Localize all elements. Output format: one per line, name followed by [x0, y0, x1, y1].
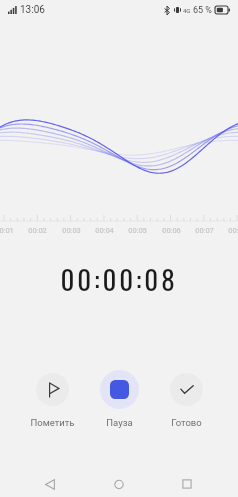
button[interactable]: Back — [35, 469, 65, 497]
staticText: 00:01 — [0, 226, 14, 235]
staticText: 00:07 — [195, 226, 214, 235]
staticText: Пауза — [106, 417, 133, 428]
staticText: 65 % — [193, 5, 212, 16]
staticText: Пометить — [30, 417, 75, 428]
staticText: Готово — [171, 417, 202, 428]
button[interactable]: Готово — [153, 369, 219, 427]
button[interactable]: Home — [104, 469, 134, 497]
staticText: 00:04 — [95, 226, 114, 235]
staticText: 00:00:08 — [60, 259, 178, 299]
button[interactable]: Пометить — [19, 369, 85, 427]
staticText: 13:06 — [20, 4, 45, 16]
button[interactable]: Recents — [172, 469, 202, 497]
staticText: 00:08 — [228, 226, 238, 235]
staticText: 00:06 — [162, 226, 181, 235]
staticText: 4G — [183, 7, 191, 14]
staticText: 00:05 — [128, 226, 147, 235]
staticText: 00:02 — [28, 226, 47, 235]
staticText: 00:03 — [62, 226, 81, 235]
button[interactable]: Пауза — [86, 369, 152, 427]
